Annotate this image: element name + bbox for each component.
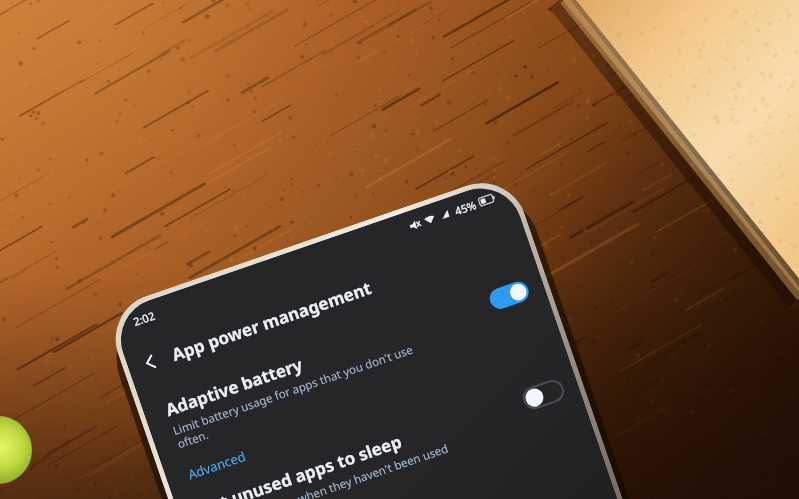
button[interactable]: Back bbox=[121, 333, 180, 391]
staticText: App power management bbox=[169, 276, 375, 366]
staticText: 45% bbox=[453, 197, 478, 218]
button[interactable]: Put unused apps to sleep bbox=[174, 363, 593, 499]
staticText: Put apps to sleep when they haven't been… bbox=[205, 441, 454, 499]
button[interactable]: Toggle on bbox=[487, 279, 532, 312]
button[interactable]: Sleeping apps bbox=[199, 438, 608, 499]
staticText: Adaptive battery bbox=[162, 352, 306, 421]
staticText: 2:02 bbox=[131, 308, 157, 329]
button[interactable]: Advanced bbox=[161, 327, 571, 499]
button[interactable]: Toggle off bbox=[521, 378, 566, 411]
staticText: Limit battery usage for apps that you do… bbox=[171, 342, 419, 451]
staticText: Advanced bbox=[185, 447, 248, 484]
button[interactable]: Deep sleeping apps bbox=[215, 484, 630, 499]
button[interactable]: Adaptive battery bbox=[139, 264, 558, 464]
staticText: Put unused apps to sleep bbox=[196, 429, 405, 499]
